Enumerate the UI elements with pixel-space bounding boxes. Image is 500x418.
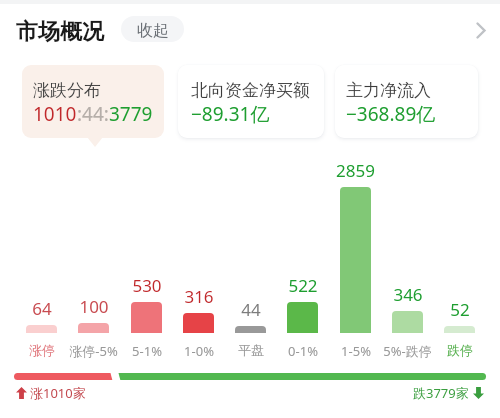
button[interactable]: More details (464, 14, 498, 46)
button[interactable]: 收起 (121, 16, 184, 42)
staticText: 北向资金净买额 (191, 80, 310, 101)
staticText: 涨停 (29, 342, 55, 358)
staticText: 52 (450, 298, 470, 321)
staticText: 跌3779家 (413, 384, 469, 402)
staticText: −89.31亿 (191, 101, 270, 127)
staticText: :44: (77, 101, 109, 127)
staticText: 522 (288, 274, 318, 297)
staticText: 64 (32, 297, 52, 320)
staticText: 3779 (109, 101, 153, 127)
staticText: 2859 (336, 159, 375, 182)
staticText: 市场概况 (16, 18, 104, 46)
staticText: 5-1% (132, 342, 162, 360)
staticText: 5%-跌停 (383, 342, 432, 360)
button[interactable]: 主力净流入 (335, 65, 478, 138)
button[interactable]: 涨跌分布 (22, 65, 164, 138)
staticText: 316 (184, 285, 214, 308)
staticText: 涨跌分布 (33, 80, 101, 101)
staticText: 跌停 (447, 342, 473, 358)
button[interactable]: 北向资金净买额 (178, 65, 324, 138)
staticText: 1-0% (184, 342, 214, 360)
staticText: 涨1010家 (30, 384, 86, 402)
staticText: 100 (79, 295, 109, 318)
staticText: 1010 (33, 101, 77, 127)
staticText: 涨停-5% (69, 342, 118, 360)
staticText: 44 (241, 298, 261, 321)
staticText: −368.89亿 (346, 101, 436, 127)
staticText: 主力净流入 (346, 80, 431, 101)
staticText: 530 (132, 274, 162, 297)
staticText: 收起 (137, 21, 169, 41)
staticText: 1-5% (341, 342, 371, 360)
staticText: 0-1% (288, 342, 318, 360)
staticText: 平盘 (238, 342, 264, 358)
staticText: 346 (393, 283, 423, 306)
